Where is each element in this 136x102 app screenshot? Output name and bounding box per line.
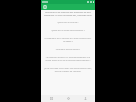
staticText: Quelle est la formule ?: [44, 21, 92, 24]
button[interactable]: Home: [44, 95, 58, 102]
button[interactable]: Quelle est la formule ?: [44, 21, 92, 24]
button[interactable]: Quelle est la durée d'abonnement ?: [44, 29, 92, 32]
button[interactable]: Le paiement passera-t-il automatiquement…: [44, 56, 92, 62]
staticText: Le paiement passera-t-il automatiquement…: [44, 56, 92, 62]
button[interactable]: Comment puis-je résilier ?: [44, 48, 92, 51]
staticText: Retrouvez ici les réponses aux questions…: [44, 11, 92, 17]
button[interactable]: Menu: [43, 5, 47, 9]
button[interactable]: Profile: [78, 95, 92, 102]
button[interactable]: Le paiement est-il sécurisé et à quel mo…: [44, 37, 92, 43]
staticText: Comment puis-je résilier ?: [44, 48, 92, 51]
button[interactable]: Settings: [61, 95, 75, 102]
staticText: Le paiement est-il sécurisé et à quel mo…: [44, 37, 92, 43]
button[interactable]: Je me suis déjà inscrit avec une autre a…: [44, 67, 92, 73]
staticText: Quelle est la durée d'abonnement ?: [44, 29, 92, 32]
staticText: Je me suis déjà inscrit avec une autre a…: [44, 67, 92, 73]
